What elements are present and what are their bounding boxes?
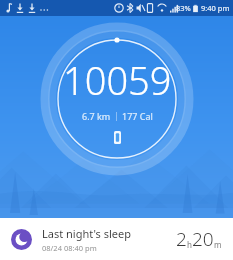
staticText: 83% — [176, 3, 191, 13]
staticText: 9:40 pm — [201, 3, 230, 13]
staticText: 08/24 08:40 pm — [42, 243, 97, 253]
staticText: h — [187, 239, 192, 250]
button[interactable]: Step goal progress — [41, 23, 193, 175]
staticText: 10059 — [63, 54, 172, 106]
button[interactable]: Last night's sleep — [0, 218, 233, 260]
staticText: 177 Cal — [122, 110, 153, 122]
staticText: Last night's sleep — [42, 226, 131, 241]
staticText: 20 — [192, 226, 214, 252]
staticText: 2 — [176, 226, 187, 252]
staticText: m — [214, 239, 222, 250]
staticText: 6.7 km — [82, 110, 111, 122]
